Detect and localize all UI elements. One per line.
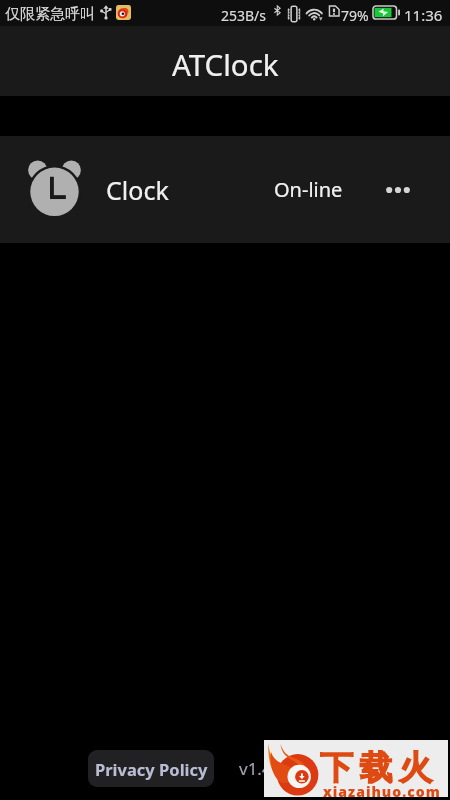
staticText: 下载火 xyxy=(320,747,439,789)
button[interactable]: Clock xyxy=(0,136,450,243)
staticText: Clock xyxy=(106,173,169,207)
staticText: 253B/s xyxy=(221,6,267,25)
staticText: ATClock xyxy=(172,44,279,84)
staticText: On-line xyxy=(274,176,343,203)
staticText: 11:36 xyxy=(404,5,443,25)
staticText: Privacy Policy xyxy=(95,758,208,780)
staticText: v1.4.5 xyxy=(239,757,286,780)
staticText: 仅限紧急呼叫 xyxy=(5,5,95,24)
button[interactable]: Privacy Policy xyxy=(88,750,214,787)
button[interactable]: More options xyxy=(376,168,420,212)
staticText: 79% xyxy=(341,6,369,25)
staticText: xiazaihuo.com xyxy=(323,782,441,800)
